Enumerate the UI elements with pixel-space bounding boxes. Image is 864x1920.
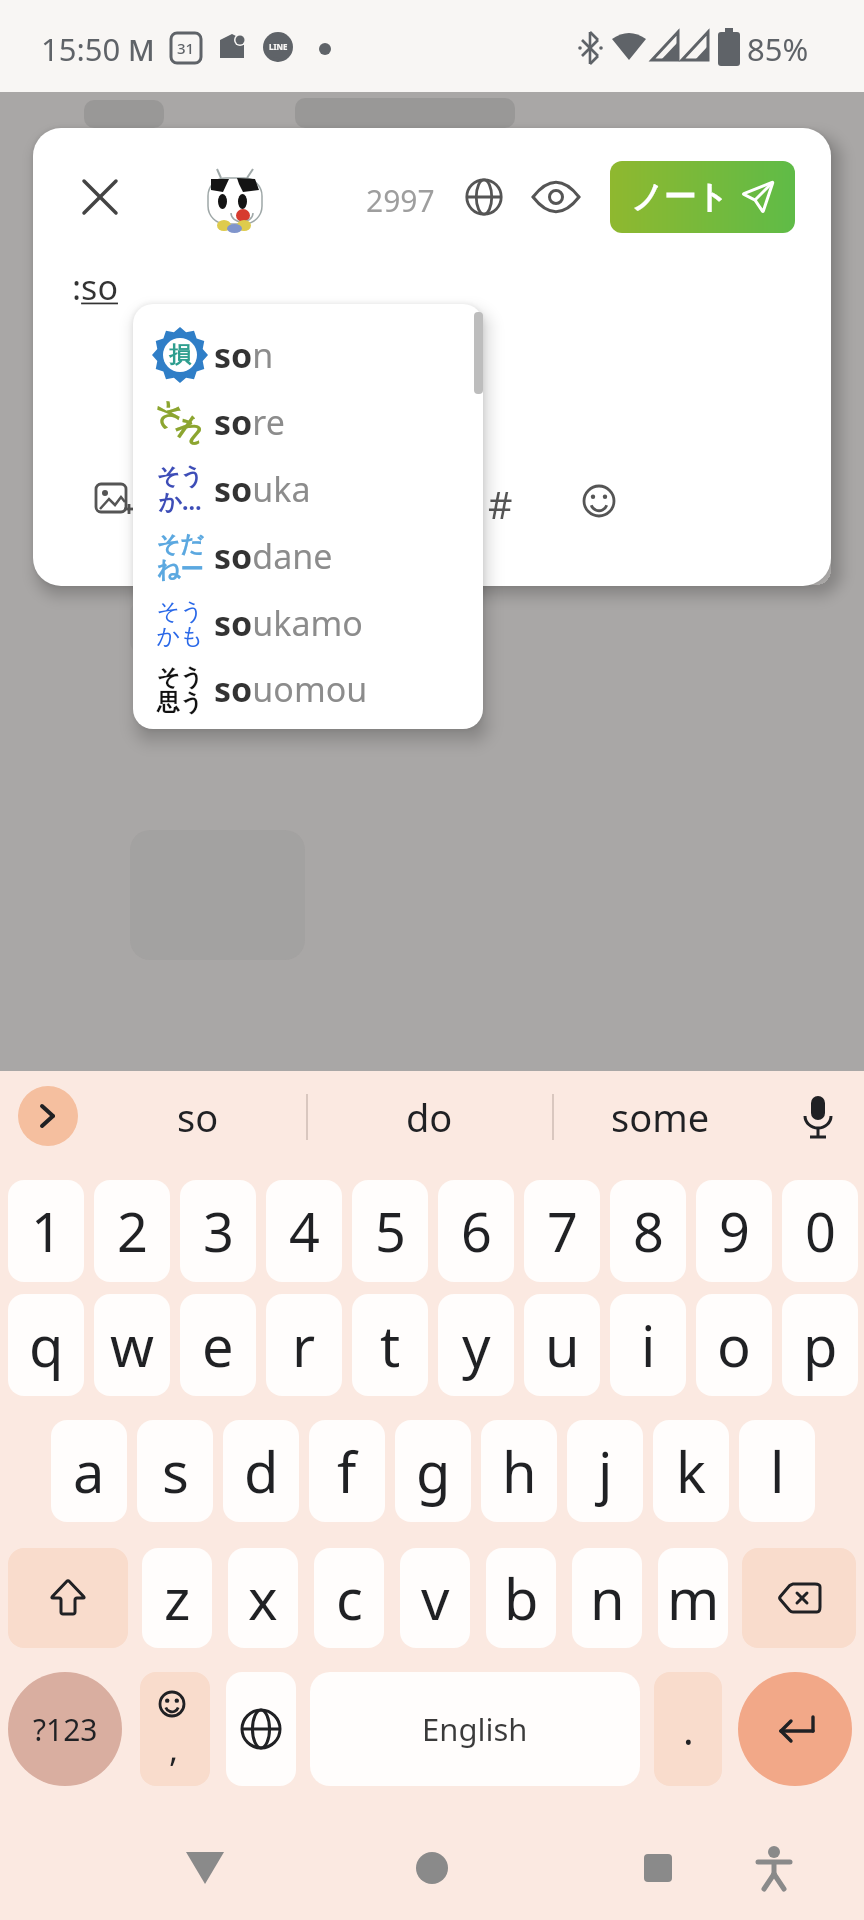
button[interactable]: sore — [214, 396, 464, 448]
button[interactable]: c — [314, 1548, 384, 1648]
button[interactable]: 6 — [438, 1180, 514, 1282]
button[interactable] — [742, 1548, 856, 1648]
staticText: v — [421, 1560, 450, 1636]
button[interactable] — [582, 484, 616, 518]
button[interactable]: 7 — [524, 1180, 600, 1282]
button[interactable]: some — [580, 1090, 740, 1144]
button[interactable]: souomou — [214, 663, 464, 715]
button[interactable] — [531, 181, 581, 213]
button[interactable]: r — [266, 1294, 342, 1396]
button[interactable]: a — [51, 1420, 127, 1522]
staticText: ?123 — [33, 1709, 98, 1750]
button[interactable]: e — [180, 1294, 256, 1396]
button[interactable] — [96, 482, 134, 516]
button[interactable]: souka — [214, 463, 464, 515]
button[interactable]: ノート — [610, 161, 795, 233]
staticText: u — [545, 1307, 580, 1383]
button[interactable]: son — [214, 329, 464, 381]
button[interactable]: b — [486, 1548, 556, 1648]
button[interactable]: q — [8, 1294, 84, 1396]
button[interactable]: g — [395, 1420, 471, 1522]
staticText: b — [504, 1560, 539, 1636]
button[interactable] — [416, 1852, 448, 1884]
button[interactable]: z — [142, 1548, 212, 1648]
button[interactable]: m — [658, 1548, 728, 1648]
staticText: 1 — [31, 1194, 62, 1268]
button[interactable]: 3 — [180, 1180, 256, 1282]
button[interactable]: h — [481, 1420, 557, 1522]
button[interactable]: 9 — [696, 1180, 772, 1282]
button[interactable]: u — [524, 1294, 600, 1396]
staticText: sore — [214, 399, 285, 445]
staticText: i — [641, 1307, 656, 1383]
staticText: 6 — [461, 1194, 492, 1268]
staticText: そう かも — [156, 597, 204, 650]
button[interactable] — [186, 1850, 224, 1886]
staticText: 8 — [633, 1194, 664, 1268]
staticText: son — [214, 332, 274, 378]
staticText: それ — [146, 391, 214, 453]
button[interactable]: y — [438, 1294, 514, 1396]
staticText: :so — [72, 264, 118, 310]
button[interactable]: . — [654, 1672, 722, 1786]
button[interactable]: v — [400, 1548, 470, 1648]
button[interactable]: s — [137, 1420, 213, 1522]
button[interactable]: x — [228, 1548, 298, 1648]
button[interactable]: , — [140, 1672, 210, 1786]
staticText: soukamo — [214, 600, 363, 646]
button[interactable]: d — [223, 1420, 299, 1522]
button[interactable]: j — [567, 1420, 643, 1522]
button[interactable] — [18, 1086, 78, 1146]
button[interactable]: l — [739, 1420, 815, 1522]
staticText: 15:50 — [41, 28, 121, 68]
button[interactable]: 8 — [610, 1180, 686, 1282]
staticText: sodane — [214, 533, 333, 579]
button[interactable]: 0 — [782, 1180, 858, 1282]
button[interactable]: 2 — [94, 1180, 170, 1282]
staticText: d — [244, 1433, 279, 1509]
button[interactable]: ?123 — [8, 1672, 122, 1786]
staticText: k — [676, 1433, 706, 1509]
button[interactable]: i — [610, 1294, 686, 1396]
staticText: e — [202, 1307, 234, 1383]
button[interactable] — [798, 1094, 838, 1142]
button[interactable]: n — [572, 1548, 642, 1648]
button[interactable]: do — [349, 1090, 509, 1144]
button[interactable] — [756, 1846, 792, 1890]
button[interactable]: p — [782, 1294, 858, 1396]
staticText: y — [462, 1307, 491, 1383]
button[interactable] — [644, 1854, 672, 1882]
button[interactable]: t — [352, 1294, 428, 1396]
button[interactable]: o — [696, 1294, 772, 1396]
staticText: 0 — [805, 1194, 836, 1268]
button[interactable] — [203, 166, 267, 232]
staticText: 2997 — [366, 180, 435, 216]
button[interactable]: soukamo — [214, 597, 464, 649]
staticText: そだ ねー — [156, 530, 204, 583]
staticText: ノート — [631, 177, 729, 217]
button[interactable]: 5 — [352, 1180, 428, 1282]
button[interactable]: so — [118, 1090, 278, 1144]
button[interactable]: 1 — [8, 1180, 84, 1282]
button[interactable]: k — [653, 1420, 729, 1522]
staticText: a — [73, 1433, 105, 1509]
staticText: そう 思う — [156, 663, 204, 716]
button[interactable]: 4 — [266, 1180, 342, 1282]
button[interactable]: sodane — [214, 530, 464, 582]
button[interactable] — [738, 1672, 852, 1786]
staticText: 4 — [289, 1194, 320, 1268]
button[interactable]: English — [310, 1672, 640, 1786]
staticText: m — [667, 1560, 720, 1636]
staticText: souomou — [214, 666, 368, 712]
staticText: そう か… — [156, 462, 204, 516]
staticText: q — [29, 1307, 64, 1383]
button[interactable]: f — [309, 1420, 385, 1522]
button[interactable] — [226, 1672, 296, 1786]
button[interactable] — [8, 1548, 128, 1648]
staticText: z — [164, 1560, 191, 1636]
button[interactable] — [80, 177, 120, 217]
button[interactable] — [464, 177, 504, 217]
staticText: 5 — [375, 1194, 406, 1268]
button[interactable]: w — [94, 1294, 170, 1396]
staticText: , — [169, 1726, 179, 1772]
